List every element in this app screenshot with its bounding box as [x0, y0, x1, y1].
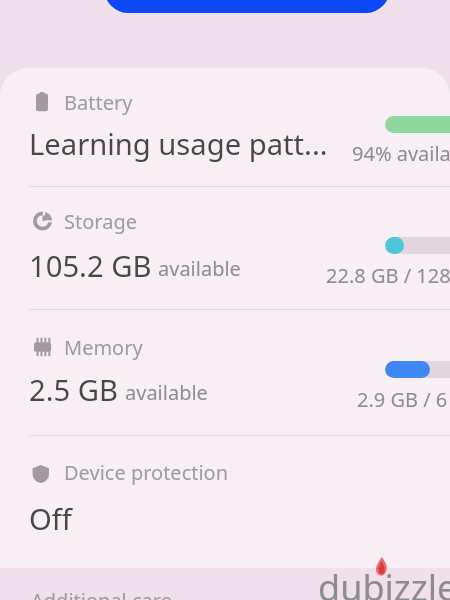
button[interactable]: Storage: [0, 187, 450, 310]
staticText: Device protection: [64, 459, 229, 486]
staticText: Memory: [64, 334, 143, 361]
staticText: 2.5 GB: [29, 370, 119, 410]
staticText: Additional care: [31, 587, 172, 600]
button[interactable]: Memory: [0, 310, 450, 435]
staticText: available: [125, 379, 208, 406]
button[interactable]: Device protection: [0, 435, 450, 565]
button[interactable]: Optimise now: [104, 0, 390, 13]
staticText: Learning usage patt...: [29, 124, 328, 164]
staticText: Storage: [64, 208, 137, 235]
button[interactable]: [0, 568, 450, 600]
staticText: available: [158, 255, 241, 282]
staticText: 22.8 GB / 128: [326, 262, 450, 289]
button[interactable]: Battery: [0, 68, 450, 187]
staticText: 94% availab: [352, 140, 450, 167]
staticText: Battery: [64, 89, 133, 116]
staticText: dubizzle: [318, 563, 450, 600]
staticText: Off: [29, 499, 72, 539]
staticText: 2.9 GB / 6: [357, 386, 448, 413]
staticText: 105.2 GB: [29, 246, 152, 286]
